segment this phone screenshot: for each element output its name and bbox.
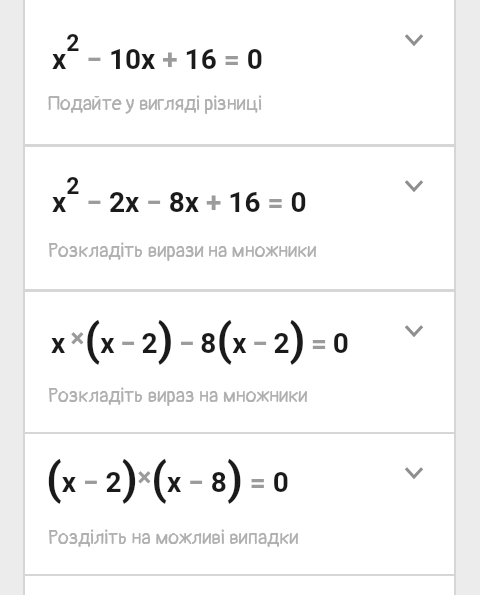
button[interactable]: (x − 2)×(x − 8) = 0 [25,434,454,574]
staticText: x ×(x − 2) − 8(x − 2) = 0 [51,313,349,366]
staticText: Подайте у вигляді різниці [48,91,262,116]
staticText: Розкладіть вирази на множники [48,238,317,263]
button[interactable]: x ×(x − 2) − 8(x − 2) = 0 [25,292,454,432]
staticText: (x − 2)×(x − 8) = 0 [46,452,289,505]
staticText: x2 − 2x − 8x + 16 = 0 [52,173,307,219]
button[interactable]: x2 − 10x + 16 = 0 [25,0,454,144]
staticText: Розділіть на можливі випадки [48,525,299,550]
button[interactable]: x2 − 2x − 8x + 16 = 0 [25,147,454,289]
staticText: x2 − 10x + 16 = 0 [52,30,263,76]
staticText: Розкладіть вираз на множники [48,383,308,408]
